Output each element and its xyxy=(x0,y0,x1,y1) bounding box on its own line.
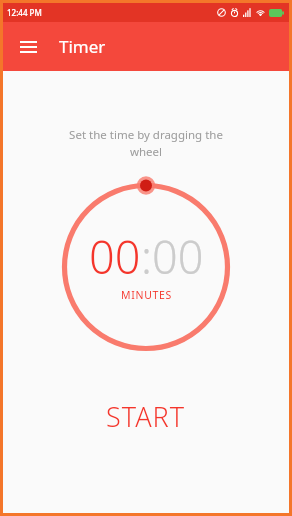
button[interactable]: Timer wheel, drag to set the time xyxy=(56,177,236,357)
staticText: MINUTES xyxy=(121,288,173,302)
staticText: START xyxy=(106,398,186,435)
staticText: 12:44 PM xyxy=(7,7,42,18)
button[interactable]: START xyxy=(82,389,210,444)
staticText: Timer xyxy=(59,35,106,58)
button[interactable]: Open navigation menu xyxy=(13,32,43,62)
staticText: 00 xyxy=(152,226,204,287)
staticText: 00 xyxy=(89,226,141,287)
staticText: Set the time by dragging the wheel xyxy=(3,127,289,159)
staticText: : xyxy=(141,226,152,287)
